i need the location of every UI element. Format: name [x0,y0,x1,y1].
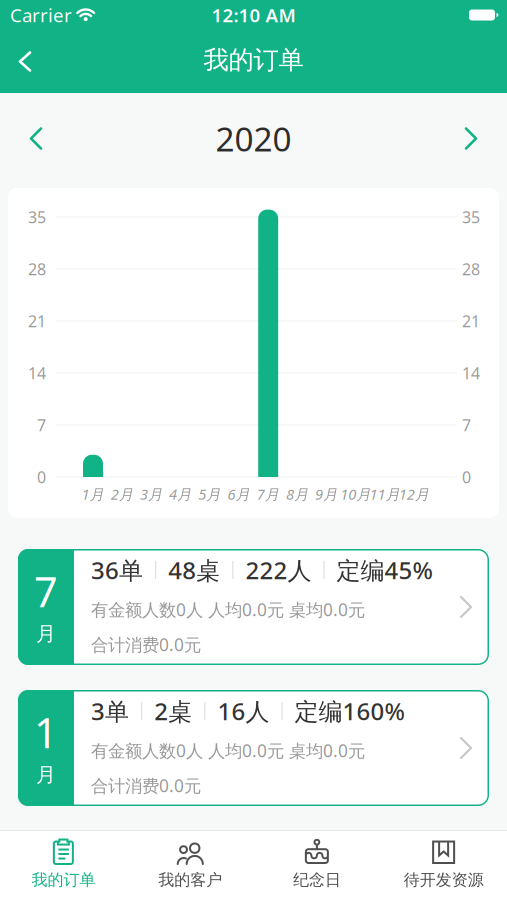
staticText: 9月 [315,484,338,504]
staticText: 2桌 [154,695,192,727]
staticText: 合计消费0.0元 [91,633,201,656]
staticText: 11月 [369,484,400,504]
staticText: 48桌 [168,554,220,586]
staticText: 纪念日 [293,870,341,890]
staticText: 1 [34,705,58,760]
staticText: 3单 [91,695,129,727]
button[interactable]: 纪念日 [253,839,380,890]
staticText: 1月 [81,484,104,504]
button[interactable]: 我的客户 [127,839,254,890]
staticText: 月 [36,622,56,646]
staticText: 28 [28,258,46,280]
staticText: 待开发资源 [404,870,484,890]
staticText: 12:10 AM [211,3,295,27]
staticText: 8月 [286,484,309,504]
staticText: 有金额人数0人 人均0.0元 桌均0.0元 [91,598,365,621]
staticText: 222人 [245,554,311,586]
staticText: 28 [462,258,480,280]
staticText: 21 [28,310,46,332]
staticText: 月 [36,763,56,787]
staticText: 2020 [215,116,291,161]
staticText: 36单 [91,554,143,586]
staticText: 定编45% [337,554,433,586]
staticText: 35 [28,206,46,228]
button[interactable]: Previous year [21,118,51,158]
staticText: 21 [462,310,480,332]
button[interactable]: 待开发资源 [380,839,507,890]
staticText: 我的订单 [203,44,303,75]
button[interactable]: Next year [456,118,486,158]
staticText: 我的订单 [31,870,95,890]
staticText: 14 [462,362,480,384]
staticText: 4月 [169,484,192,504]
staticText: 2月 [111,484,134,504]
staticText: 7 [462,414,471,436]
staticText: 14 [28,362,46,384]
button[interactable]: 7 [18,549,489,665]
staticText: 7 [34,564,58,619]
staticText: 我的客户 [158,870,222,890]
staticText: 16人 [217,695,269,727]
button[interactable]: 1 [18,690,489,806]
staticText: 35 [462,206,480,228]
button[interactable]: 我的订单 [0,839,127,890]
staticText: 合计消费0.0元 [91,774,201,797]
staticText: 7月 [257,484,280,504]
staticText: 7 [37,414,46,436]
staticText: 有金额人数0人 人均0.0元 桌均0.0元 [91,739,365,762]
staticText: 0 [37,466,46,488]
staticText: 6月 [227,484,250,504]
staticText: 5月 [198,484,221,504]
staticText: 12月 [399,484,430,504]
staticText: Carrier [10,3,72,27]
button[interactable]: Back [0,40,30,82]
staticText: 10月 [340,484,371,504]
staticText: 3月 [140,484,163,504]
staticText: 0 [462,466,471,488]
staticText: 定编160% [295,695,405,727]
